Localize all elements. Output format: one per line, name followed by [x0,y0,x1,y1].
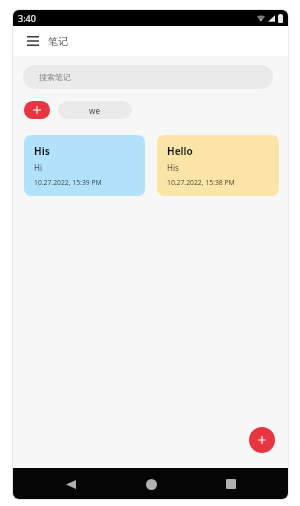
button[interactable]: Hello [157,135,279,196]
staticText: Hi [34,162,42,173]
button[interactable]: 搜索笔记 [23,65,273,89]
button[interactable]: Add note [249,427,275,453]
button[interactable]: we [58,101,132,119]
staticText: 笔记 [48,35,68,48]
staticText: His [34,144,50,158]
button[interactable]: Add category [24,101,50,119]
staticText: His [167,162,179,173]
staticText: Hello [167,144,193,158]
button[interactable]: Back [60,473,82,495]
staticText: we [89,105,101,116]
staticText: 10.27.2022, 15:39 PM [34,178,102,187]
staticText: 3:40 [18,12,36,24]
button[interactable]: Recents [220,473,242,495]
button[interactable]: Menu [24,32,42,50]
staticText: 10.27.2022, 15:38 PM [167,178,235,187]
button[interactable]: His [24,135,145,196]
button[interactable]: Home [140,473,162,495]
staticText: 搜索笔记 [39,72,71,82]
